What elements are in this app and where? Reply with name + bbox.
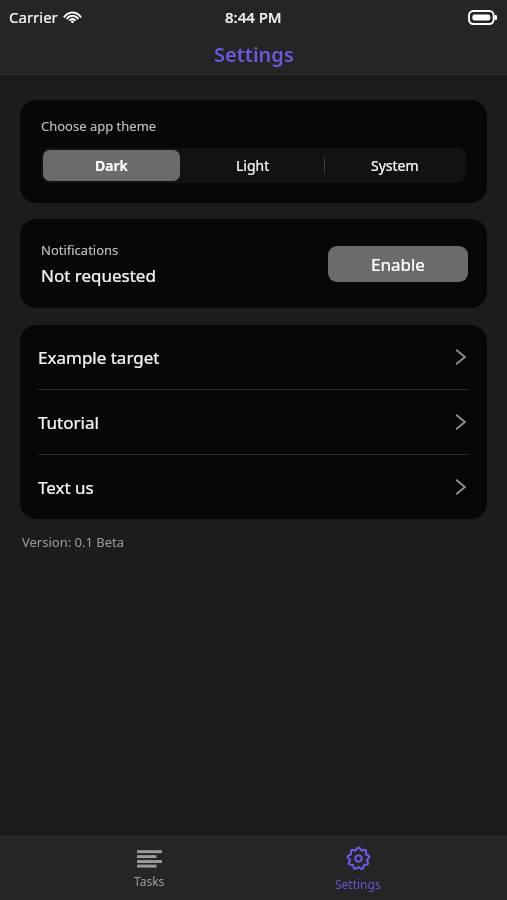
- staticText: Text us: [38, 476, 455, 499]
- staticText: System: [371, 156, 419, 175]
- staticText: Not requested: [41, 264, 156, 287]
- staticText: Dark: [95, 156, 128, 175]
- button[interactable]: Settings: [298, 837, 418, 900]
- button[interactable]: Light: [182, 148, 324, 183]
- staticText: Tutorial: [38, 411, 455, 434]
- staticText: Settings: [214, 41, 294, 68]
- button[interactable]: Tasks: [89, 837, 209, 900]
- staticText: Choose app theme: [41, 117, 157, 135]
- staticText: Carrier: [9, 7, 58, 27]
- staticText: Notifications: [41, 241, 119, 259]
- button[interactable]: Example target: [20, 325, 487, 389]
- staticText: 8:44 PM: [225, 7, 282, 27]
- button[interactable]: Enable: [328, 246, 468, 282]
- staticText: Tasks: [134, 873, 165, 889]
- button[interactable]: Tutorial: [20, 390, 487, 454]
- staticText: Version: 0.1 Beta: [22, 533, 125, 551]
- button[interactable]: System: [324, 148, 466, 183]
- staticText: Example target: [38, 346, 455, 369]
- button[interactable]: Text us: [20, 455, 487, 519]
- staticText: Settings: [335, 876, 381, 892]
- staticText: Light: [236, 156, 270, 175]
- staticText: Enable: [371, 253, 425, 276]
- button[interactable]: Dark: [43, 150, 180, 181]
